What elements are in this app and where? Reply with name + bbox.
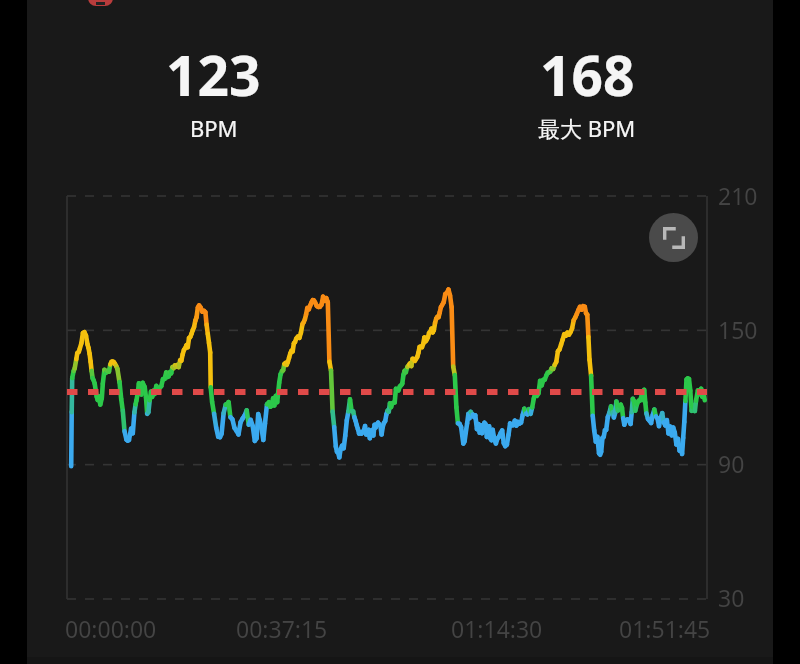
staticText: 01:51:45 (619, 613, 711, 644)
staticText: 210 (718, 180, 758, 211)
staticText: 90 (718, 448, 745, 479)
staticText: BPM (190, 113, 238, 143)
staticText: 150 (718, 314, 758, 345)
staticText: 00:37:15 (236, 613, 328, 644)
staticText: 123 (166, 37, 261, 112)
button[interactable]: 168 (400, 35, 773, 145)
staticText: 00:00:00 (65, 613, 157, 644)
staticText: 168 (540, 37, 635, 112)
staticText: 最大 BPM (538, 113, 636, 143)
button[interactable]: Expand chart (649, 213, 698, 262)
staticText: 30 (718, 582, 745, 613)
staticText: 01:14:30 (451, 613, 543, 644)
button[interactable]: 123 (27, 35, 400, 145)
